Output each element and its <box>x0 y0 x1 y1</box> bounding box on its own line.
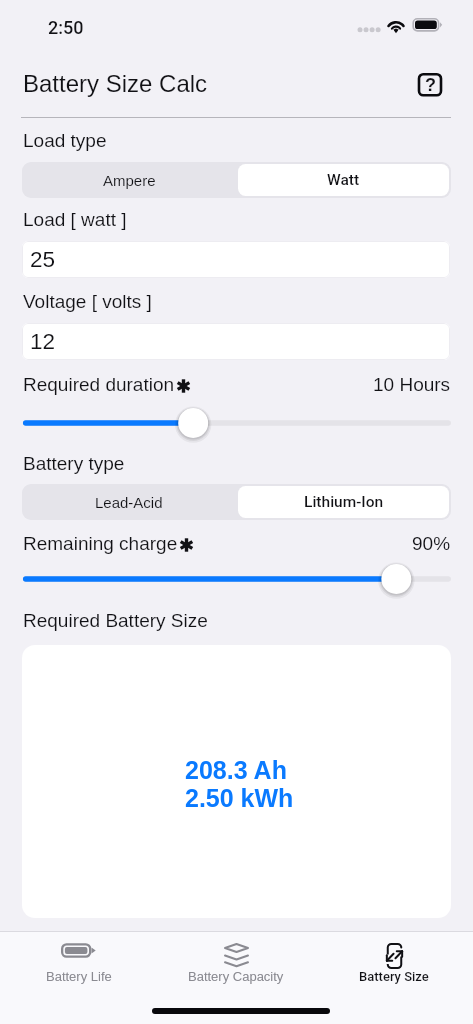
button[interactable]: 12 <box>22 323 450 360</box>
staticText: 2:50 <box>48 17 84 38</box>
button[interactable]: Help <box>417 71 443 97</box>
staticText: Ampere <box>103 172 156 189</box>
staticText: Lead-Acid <box>95 494 163 511</box>
staticText: Battery Capacity <box>188 969 284 984</box>
staticText: Watt <box>327 171 360 189</box>
button[interactable]: Battery Capacity <box>157 931 315 991</box>
staticText: Load type <box>23 130 107 151</box>
button[interactable]: 25 <box>22 241 450 278</box>
button[interactable]: Battery Life <box>0 931 157 991</box>
staticText: 2.50 kWh <box>185 784 294 812</box>
staticText: 12 <box>30 329 56 354</box>
staticText: Required Battery Size <box>23 610 208 631</box>
staticText: 90% <box>412 533 451 554</box>
staticText: Lithium-Ion <box>304 493 384 511</box>
staticText: Load [ watt ] <box>23 209 127 230</box>
staticText: Battery Size <box>359 969 429 984</box>
staticText: 10 Hours <box>373 374 451 395</box>
staticText: Battery Life <box>46 969 112 984</box>
staticText: Remaining charge <box>23 533 178 554</box>
button[interactable]: Lead-Acid <box>22 484 236 520</box>
button[interactable] <box>23 407 450 439</box>
staticText: Voltage [ volts ] <box>23 291 152 312</box>
button[interactable]: Watt <box>238 164 449 196</box>
button[interactable]: Lithium-Ion <box>238 486 449 518</box>
button[interactable]: Battery Size <box>315 931 473 991</box>
staticText: Battery type <box>23 453 125 474</box>
staticText: ? <box>425 75 436 95</box>
staticText: 25 <box>30 247 56 272</box>
staticText: Battery Size Calc <box>23 70 208 97</box>
staticText: 208.3 Ah <box>185 756 287 784</box>
staticText: Required duration <box>23 374 175 395</box>
button[interactable] <box>23 563 450 595</box>
button[interactable]: Ampere <box>22 162 236 198</box>
